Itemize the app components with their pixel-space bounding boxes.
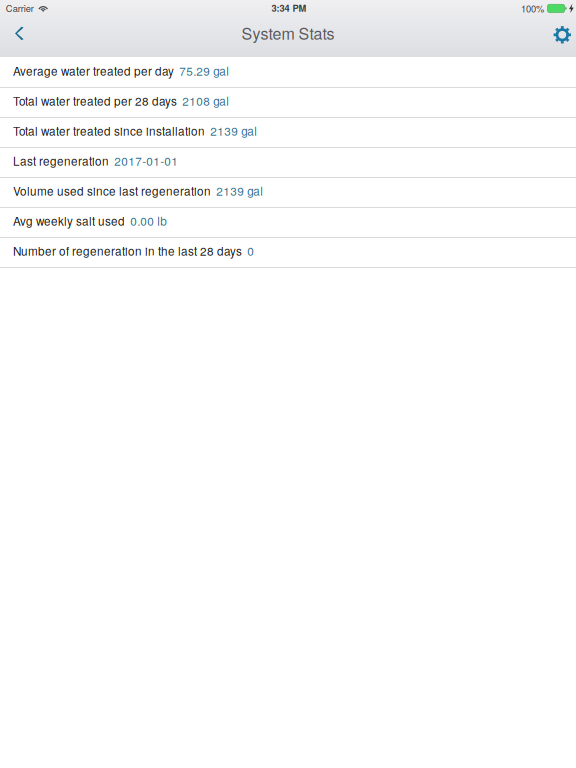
staticText: Carrier — [6, 1, 34, 15]
button[interactable]: Total water treated per 28 days — [0, 87, 576, 117]
button[interactable]: Last regeneration — [0, 147, 576, 177]
staticText: 2017-01-01 — [114, 152, 178, 169]
button[interactable]: Average water treated per day — [0, 57, 576, 87]
staticText: System Stats — [241, 21, 334, 44]
button[interactable]: Number of regeneration in the last 28 da… — [0, 237, 576, 267]
staticText: Number of regeneration in the last 28 da… — [13, 242, 242, 259]
staticText: 2108 gal — [182, 92, 229, 109]
staticText: Last regeneration — [13, 152, 109, 169]
staticText: 75.29 gal — [179, 62, 229, 79]
staticText: 3:34 PM — [271, 1, 306, 15]
staticText: 100% — [521, 2, 544, 15]
staticText: Avg weekly salt used — [13, 212, 125, 229]
staticText: Total water treated since installation — [13, 122, 205, 139]
staticText: 0.00 lb — [130, 212, 167, 229]
staticText: 0 — [247, 242, 254, 259]
button[interactable]: Settings — [545, 18, 576, 52]
button[interactable]: Volume used since last regeneration — [0, 177, 576, 207]
button[interactable]: Avg weekly salt used — [0, 207, 576, 237]
button[interactable]: Back — [4, 16, 34, 50]
staticText: Average water treated per day — [13, 62, 174, 79]
staticText: 2139 gal — [216, 182, 263, 199]
button[interactable]: Total water treated since installation — [0, 117, 576, 147]
staticText: Volume used since last regeneration — [13, 182, 211, 199]
staticText: 2139 gal — [210, 122, 257, 139]
staticText: Total water treated per 28 days — [13, 92, 177, 109]
